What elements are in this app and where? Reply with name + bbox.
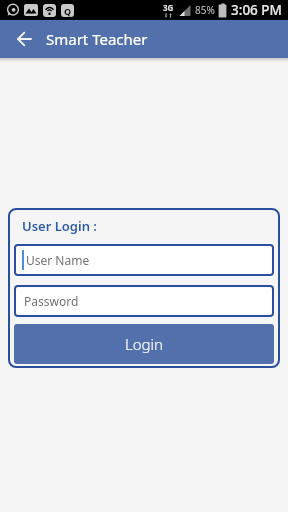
staticText: 85% bbox=[195, 3, 215, 17]
staticText: User Login : bbox=[22, 217, 97, 235]
button[interactable]: Password bbox=[14, 285, 274, 317]
button[interactable]: Login bbox=[14, 324, 274, 364]
staticText: Login bbox=[125, 334, 163, 354]
staticText: Q bbox=[64, 5, 72, 17]
staticText: 3:06 PM bbox=[231, 1, 282, 19]
staticText: Smart Teacher bbox=[46, 29, 148, 49]
staticText: Password bbox=[24, 293, 79, 309]
staticText: User Name bbox=[26, 252, 90, 268]
staticText: 3G bbox=[163, 2, 174, 13]
button[interactable]: User Name bbox=[14, 244, 274, 276]
button[interactable] bbox=[14, 29, 34, 49]
